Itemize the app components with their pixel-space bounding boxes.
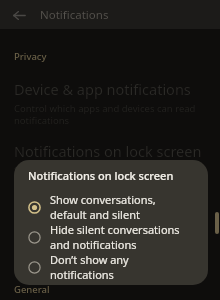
staticText: Notifications on lock screen	[28, 168, 174, 183]
button[interactable]: Don’t show any	[14, 252, 208, 282]
staticText: General	[14, 283, 50, 296]
staticText: Hide silent conversations	[50, 222, 180, 237]
button[interactable]: Back	[7, 3, 31, 27]
staticText: Don’t show any	[50, 252, 129, 267]
staticText: Privacy	[14, 50, 47, 63]
staticText: Show conversations,	[50, 192, 156, 207]
staticText: and notifications	[50, 237, 137, 252]
button[interactable]: Show conversations,	[14, 192, 208, 222]
staticText: Show conversations, default and silent	[14, 164, 186, 177]
staticText: Control which apps and devices can read …	[14, 102, 204, 127]
staticText: Notifications	[40, 7, 109, 23]
button[interactable]: Hide silent conversations	[14, 222, 208, 252]
staticText: notifications	[50, 267, 114, 282]
staticText: Device & app notifications	[14, 79, 191, 99]
button[interactable]: Device & app notifications	[0, 79, 220, 127]
button[interactable]: Notifications on lock screen	[0, 141, 220, 177]
staticText: Notifications on lock screen	[14, 141, 202, 161]
staticText: default and silent	[50, 207, 140, 222]
